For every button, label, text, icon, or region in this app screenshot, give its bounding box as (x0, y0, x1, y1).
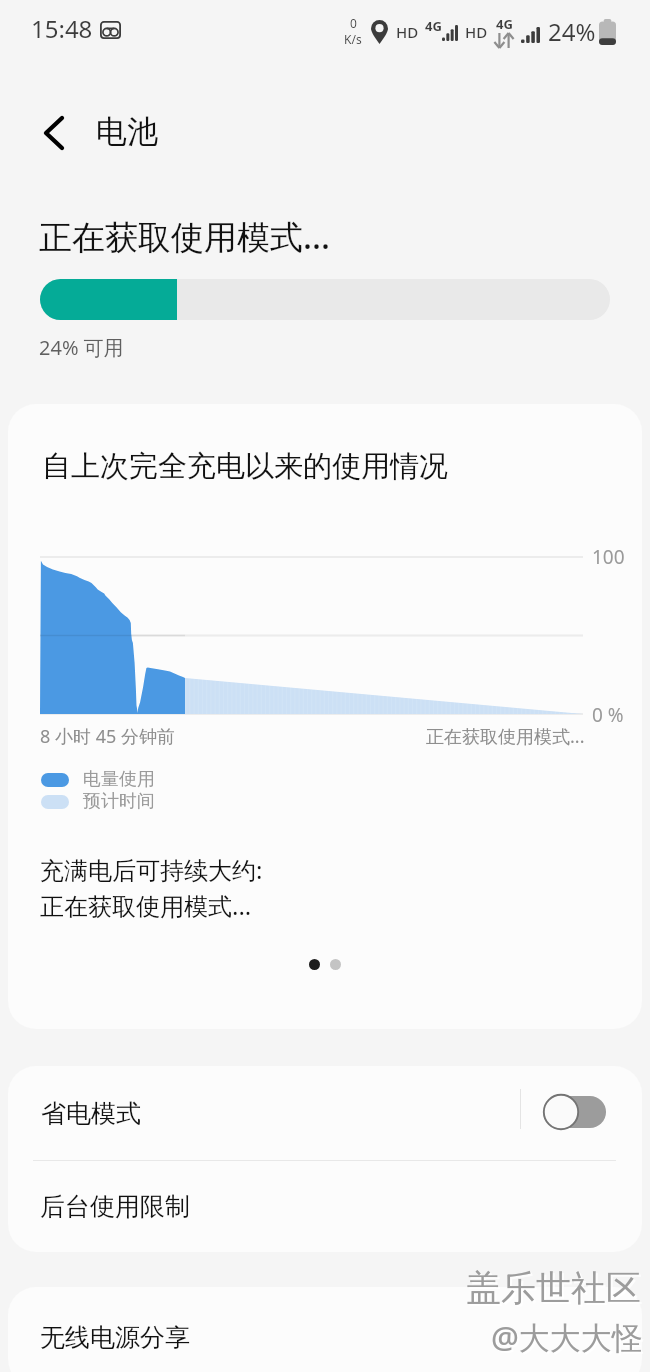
staticText: 24% 可用 (39, 334, 124, 361)
staticText: 15:48 (31, 12, 93, 45)
staticText: K/s (344, 31, 362, 47)
button[interactable]: 省电模式 开关 (531, 1088, 611, 1138)
staticText: 100 (592, 544, 625, 570)
staticText: 0 % (592, 702, 624, 728)
staticText: 8 小时 45 分钟前 (40, 724, 175, 749)
staticText: 省电模式 (41, 1098, 141, 1129)
staticText: 预计时间 (83, 790, 155, 813)
staticText: 后台使用限制 (40, 1191, 190, 1222)
staticText: @大大大怪 (493, 1318, 645, 1360)
staticText: 正在获取使用模式... (426, 724, 585, 749)
staticText: 正在获取使用模式... (39, 214, 330, 259)
staticText: 自上次完全充电以来的使用情况 (42, 448, 448, 485)
staticText: 盖乐世社区 (466, 1266, 641, 1310)
staticText: 0 (350, 15, 357, 31)
staticText: HD (465, 22, 488, 42)
button[interactable]: Back (26, 105, 82, 161)
staticText: @大大大怪 (491, 1316, 643, 1358)
staticText: 正在获取使用模式... (40, 889, 252, 922)
staticText: 电池 (96, 112, 158, 151)
button[interactable]: 省电模式 (8, 1066, 642, 1160)
button[interactable]: 电量 24% (40, 279, 610, 320)
staticText: 电量使用 (83, 768, 155, 791)
staticText: 无线电源分享 (40, 1322, 190, 1353)
staticText: 盖乐世社区 (468, 1268, 643, 1312)
button[interactable]: 无线电源分享 (8, 1287, 642, 1372)
staticText: HD (396, 22, 419, 42)
staticText: 4G (496, 15, 513, 33)
staticText: 4G (425, 17, 442, 35)
button[interactable]: 第 1 页 (309, 959, 320, 970)
staticText: 充满电后可持续大约: (40, 853, 263, 886)
button[interactable]: 后台使用限制 (8, 1161, 642, 1252)
button[interactable]: 第 2 页 (330, 959, 341, 970)
staticText: 24% (548, 15, 596, 48)
